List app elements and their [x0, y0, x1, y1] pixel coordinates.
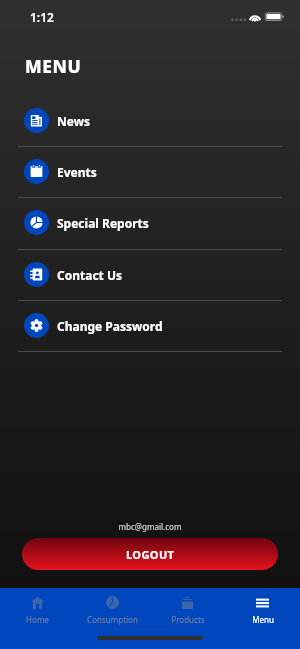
button[interactable]: Menu	[225, 588, 300, 649]
staticText: Change Password	[57, 318, 163, 334]
staticText: MENU	[25, 54, 82, 78]
staticText: Home	[26, 614, 49, 625]
button[interactable]: News	[0, 95, 300, 146]
button[interactable]: Change Password	[0, 300, 300, 351]
button[interactable]: Consumption	[75, 588, 150, 649]
button[interactable]: Products	[150, 588, 225, 649]
staticText: Menu	[252, 614, 274, 625]
staticText: Special Reports	[57, 215, 149, 231]
staticText: Contact Us	[57, 267, 123, 283]
button[interactable]: Events	[0, 146, 300, 197]
staticText: Consumption	[87, 614, 138, 625]
button[interactable]: Home	[0, 588, 75, 649]
staticText: Events	[57, 164, 97, 180]
staticText: mbc@gmail.com	[0, 521, 300, 532]
button[interactable]: Special Reports	[0, 197, 300, 248]
staticText: LOGOUT	[126, 547, 175, 562]
button[interactable]: LOGOUT	[22, 538, 278, 570]
staticText: News	[57, 113, 90, 129]
button[interactable]: Contact Us	[0, 249, 300, 300]
staticText: Products	[171, 614, 205, 625]
staticText: 1:12	[30, 9, 54, 25]
